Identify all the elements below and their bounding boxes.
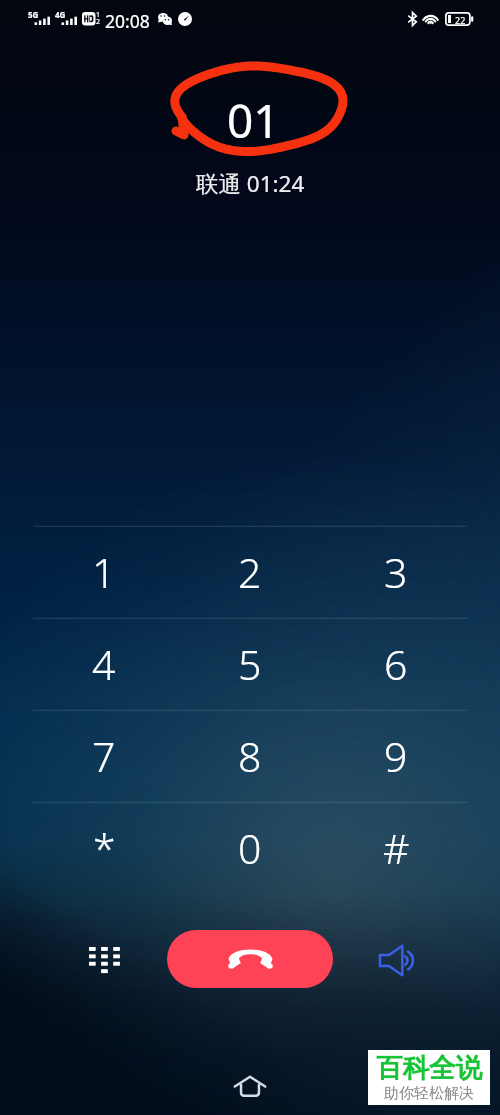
staticText: 5 bbox=[238, 636, 262, 692]
button[interactable]: 3 bbox=[323, 525, 469, 617]
button[interactable]: 8 bbox=[177, 709, 323, 801]
button[interactable]: Speaker bbox=[359, 924, 431, 996]
button[interactable]: # bbox=[323, 801, 469, 893]
button[interactable]: * bbox=[31, 801, 177, 893]
staticText: 20:08 bbox=[105, 9, 150, 33]
button[interactable]: 0 bbox=[177, 801, 323, 893]
button[interactable]: Home bbox=[218, 1067, 282, 1105]
button[interactable]: End call bbox=[167, 930, 333, 988]
button[interactable]: 4 bbox=[31, 617, 177, 709]
button[interactable]: 2 bbox=[177, 525, 323, 617]
button[interactable]: 5 bbox=[177, 617, 323, 709]
staticText: 4 bbox=[92, 636, 116, 692]
staticText: 4G bbox=[55, 9, 66, 20]
staticText: 22 bbox=[455, 14, 466, 26]
staticText: 0 bbox=[238, 820, 262, 876]
staticText: 7 bbox=[92, 728, 116, 784]
staticText: * bbox=[93, 820, 116, 876]
staticText: 3 bbox=[384, 544, 408, 600]
staticText: 助你轻松解决 bbox=[384, 1084, 474, 1103]
staticText: 百科全说 bbox=[376, 1051, 482, 1084]
staticText: 1 bbox=[96, 10, 101, 20]
staticText: 1 bbox=[92, 544, 116, 600]
button[interactable]: 6 bbox=[323, 617, 469, 709]
staticText: 9 bbox=[384, 728, 408, 784]
button[interactable]: 9 bbox=[323, 709, 469, 801]
button[interactable]: 1 bbox=[31, 525, 177, 617]
staticText: 5G bbox=[28, 9, 39, 20]
button[interactable]: 7 bbox=[31, 709, 177, 801]
staticText: 联通 01:24 bbox=[196, 168, 305, 199]
staticText: 01 bbox=[227, 89, 280, 152]
staticText: 2 bbox=[96, 17, 101, 27]
staticText: 8 bbox=[238, 728, 262, 784]
staticText: 6 bbox=[384, 636, 408, 692]
staticText: # bbox=[383, 820, 410, 876]
button[interactable]: Show keypad bbox=[68, 924, 140, 996]
staticText: 2 bbox=[238, 544, 262, 600]
